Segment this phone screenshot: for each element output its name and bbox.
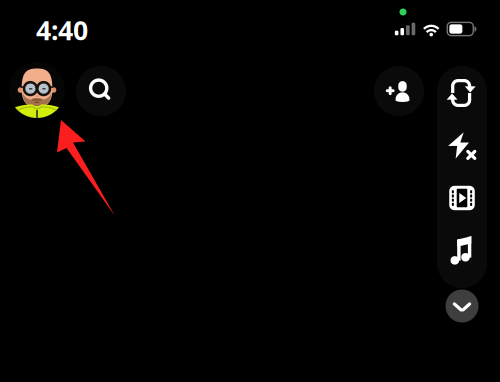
button[interactable]: Flip camera bbox=[439, 69, 485, 117]
staticText: 4:40 bbox=[36, 12, 88, 48]
button[interactable]: Flash off bbox=[439, 123, 485, 171]
button[interactable]: Add Friends bbox=[374, 66, 424, 116]
button[interactable]: Timeline bbox=[439, 174, 485, 222]
button[interactable]: Show more bbox=[445, 289, 478, 322]
button[interactable]: Music bbox=[439, 226, 485, 274]
button[interactable]: Profile bbox=[9, 62, 65, 118]
button[interactable]: Search bbox=[76, 66, 126, 116]
